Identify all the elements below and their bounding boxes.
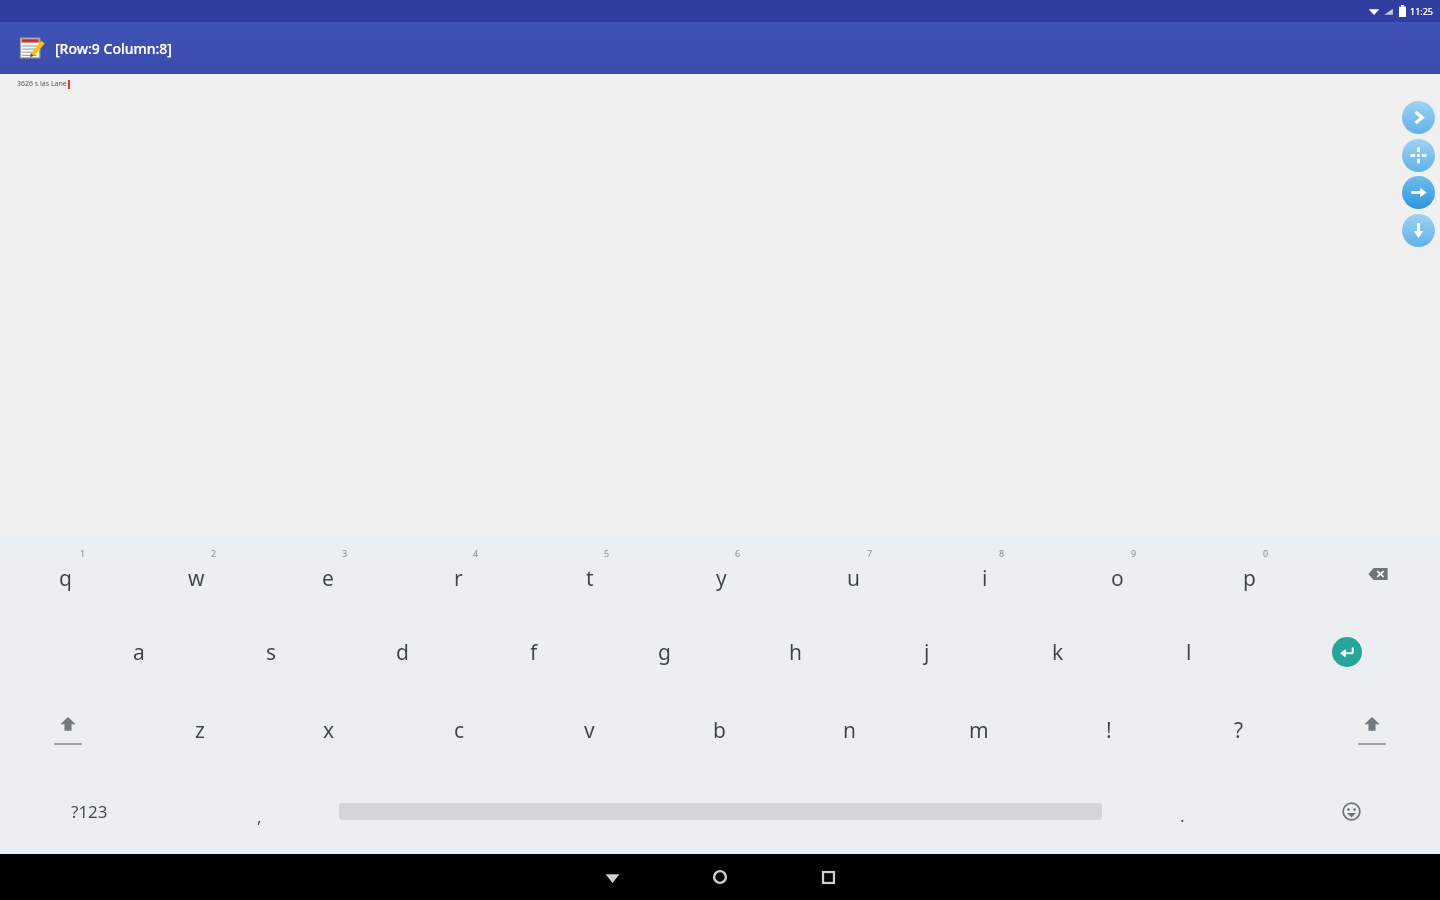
button[interactable]: x bbox=[264, 691, 394, 769]
button[interactable]: Move down bbox=[1402, 214, 1435, 247]
staticText: x bbox=[323, 716, 335, 745]
staticText: 11:25 bbox=[1410, 5, 1434, 17]
button[interactable]: n bbox=[784, 691, 914, 769]
staticText: 9 bbox=[1131, 547, 1137, 559]
staticText: 1 bbox=[80, 547, 86, 559]
staticText: q bbox=[59, 564, 72, 593]
button[interactable]: p bbox=[1183, 535, 1315, 613]
button[interactable]: g bbox=[599, 613, 730, 691]
button[interactable]: , bbox=[179, 769, 339, 854]
staticText: e bbox=[322, 564, 334, 593]
button[interactable]: Back bbox=[584, 854, 640, 900]
staticText: w bbox=[188, 564, 205, 593]
button[interactable]: Backspace bbox=[1315, 535, 1440, 613]
staticText: t bbox=[586, 564, 594, 593]
button[interactable]: h bbox=[730, 613, 861, 691]
button[interactable]: v bbox=[524, 691, 654, 769]
button[interactable]: d bbox=[337, 613, 468, 691]
staticText: r bbox=[454, 564, 463, 593]
button[interactable]: f bbox=[468, 613, 599, 691]
staticText: i bbox=[982, 564, 988, 593]
staticText: s bbox=[266, 638, 277, 667]
staticText: 0 bbox=[1263, 547, 1269, 559]
staticText: c bbox=[454, 716, 465, 745]
staticText: 5 bbox=[604, 547, 610, 559]
staticText: n bbox=[843, 716, 856, 745]
button[interactable]: z bbox=[135, 691, 264, 769]
staticText: , bbox=[257, 805, 262, 828]
button[interactable]: ! bbox=[1044, 691, 1174, 769]
button[interactable]: Tab right bbox=[1402, 176, 1435, 209]
staticText: 8 bbox=[999, 547, 1005, 559]
button[interactable]: l bbox=[1123, 613, 1254, 691]
staticText: 4 bbox=[473, 547, 479, 559]
staticText: l bbox=[1186, 638, 1192, 667]
staticText: o bbox=[1111, 564, 1124, 593]
button[interactable]: o bbox=[1051, 535, 1183, 613]
button[interactable]: Move bbox=[1402, 139, 1435, 172]
button[interactable]: a bbox=[73, 613, 205, 691]
staticText: h bbox=[789, 638, 802, 667]
button[interactable]: t bbox=[524, 535, 655, 613]
staticText: ?123 bbox=[71, 800, 108, 823]
staticText: d bbox=[396, 638, 409, 667]
staticText: j bbox=[924, 638, 930, 667]
button[interactable]: b bbox=[654, 691, 784, 769]
staticText: 3626 s las Lane bbox=[17, 79, 67, 89]
button[interactable]: y bbox=[655, 535, 787, 613]
button[interactable]: Recents bbox=[800, 854, 856, 900]
button[interactable]: ?123 bbox=[0, 769, 179, 854]
staticText: u bbox=[847, 564, 860, 593]
button[interactable]: c bbox=[394, 691, 524, 769]
staticText: 3 bbox=[342, 547, 348, 559]
staticText: f bbox=[530, 638, 538, 667]
button[interactable]: m bbox=[914, 691, 1044, 769]
staticText: ! bbox=[1106, 716, 1112, 745]
staticText: . bbox=[1180, 804, 1185, 827]
button[interactable]: q bbox=[0, 535, 131, 613]
staticText: g bbox=[658, 638, 671, 667]
staticText: ? bbox=[1234, 716, 1244, 745]
button[interactable]: Shift right bbox=[1304, 691, 1440, 769]
button[interactable]: e bbox=[262, 535, 393, 613]
staticText: 2 bbox=[211, 547, 217, 559]
button[interactable]: Enter bbox=[1254, 613, 1440, 691]
button[interactable]: Next field bbox=[1402, 101, 1435, 134]
button[interactable]: w bbox=[131, 535, 262, 613]
button[interactable]: Home bbox=[692, 854, 748, 900]
button[interactable]: Space bbox=[339, 769, 1102, 854]
button[interactable]: [Row:9 Column:8] bbox=[0, 22, 1440, 74]
staticText: 6 bbox=[735, 547, 741, 559]
button[interactable]: Emoji bbox=[1262, 769, 1440, 854]
button[interactable]: ? bbox=[1174, 691, 1304, 769]
staticText: m bbox=[969, 716, 989, 745]
staticText: b bbox=[713, 716, 726, 745]
button[interactable]: s bbox=[205, 613, 337, 691]
button[interactable]: Shift bbox=[0, 691, 135, 769]
staticText: k bbox=[1052, 638, 1064, 667]
button[interactable]: k bbox=[992, 613, 1123, 691]
staticText: a bbox=[133, 638, 145, 667]
staticText: z bbox=[195, 716, 205, 745]
staticText: [Row:9 Column:8] bbox=[55, 39, 172, 58]
button[interactable]: j bbox=[861, 613, 992, 691]
staticText: y bbox=[716, 564, 727, 593]
staticText: p bbox=[1243, 564, 1256, 593]
staticText: v bbox=[584, 716, 595, 745]
button[interactable]: r bbox=[393, 535, 524, 613]
button[interactable]: u bbox=[787, 535, 919, 613]
staticText: 7 bbox=[867, 547, 873, 559]
button[interactable]: i bbox=[919, 535, 1051, 613]
